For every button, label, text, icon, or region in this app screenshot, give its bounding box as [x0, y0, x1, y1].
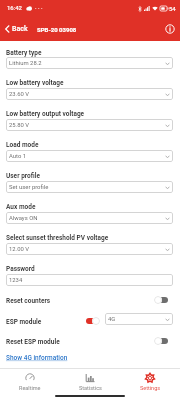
- staticText: 23.60 V: [9, 91, 30, 98]
- button[interactable]: Set user profile: [6, 181, 173, 193]
- staticText: Select sunset threshold PV voltage: [6, 234, 109, 242]
- staticText: Reset counters: [6, 297, 51, 305]
- staticText: 25.80 V: [9, 122, 30, 129]
- staticText: Back: [12, 25, 28, 33]
- staticText: Low battery voltage: [6, 79, 64, 87]
- staticText: Password: [6, 265, 35, 273]
- staticText: 12.00 V: [9, 246, 30, 253]
- button[interactable]: Auto 1: [6, 150, 173, 162]
- button[interactable]: Realtime: [0, 369, 60, 391]
- button[interactable]: 25.80 V: [6, 119, 173, 131]
- staticText: 54: [169, 5, 176, 12]
- staticText: 16:42: [7, 4, 22, 11]
- staticText: Statistics: [79, 385, 102, 391]
- staticText: 1234: [9, 277, 23, 284]
- staticText: · · ·: [35, 4, 43, 11]
- button[interactable]: Reset ESP module: [154, 336, 169, 346]
- staticText: Reset ESP module: [6, 338, 60, 346]
- button[interactable]: Reset counters: [154, 295, 169, 305]
- staticText: Settings: [140, 385, 161, 391]
- button[interactable]: Show 4G information: [6, 354, 68, 362]
- button[interactable]: 23.60 V: [6, 88, 173, 100]
- staticText: ESP module: [6, 318, 42, 326]
- staticText: 4G: [108, 316, 116, 323]
- staticText: Low battery output voltage: [6, 110, 85, 118]
- staticText: Realtime: [19, 385, 41, 391]
- staticText: Lithium 28.2: [9, 60, 42, 67]
- button[interactable]: 12.00 V: [6, 243, 173, 255]
- staticText: Always ON: [9, 215, 38, 222]
- button[interactable]: 4G: [105, 313, 173, 325]
- staticText: Load mode: [6, 141, 39, 149]
- staticText: SPB-20 03908: [37, 26, 77, 33]
- staticText: User profile: [6, 172, 40, 180]
- button[interactable]: 1234: [6, 274, 173, 286]
- button[interactable]: Information: [162, 21, 178, 37]
- button[interactable]: Always ON: [6, 212, 173, 224]
- button[interactable]: ESP module: [85, 316, 100, 326]
- staticText: Aux mode: [6, 203, 36, 211]
- staticText: Battery type: [6, 49, 42, 57]
- button[interactable]: Back: [4, 17, 28, 41]
- staticText: Auto 1: [9, 153, 27, 160]
- button[interactable]: Lithium 28.2: [6, 57, 173, 69]
- button[interactable]: Statistics: [60, 369, 120, 391]
- button[interactable]: Settings: [120, 369, 180, 391]
- staticText: Set user profile: [9, 184, 49, 191]
